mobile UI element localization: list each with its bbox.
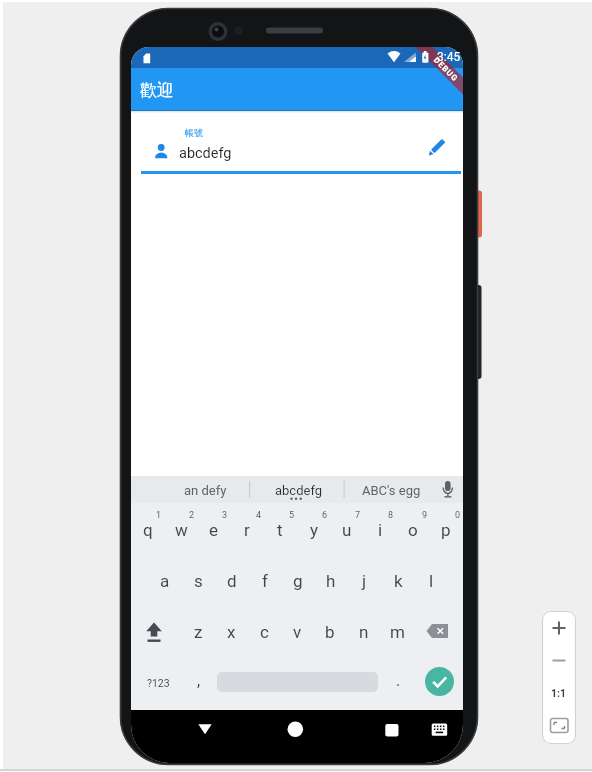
button[interactable]: i — [320, 510, 440, 550]
button[interactable]: s — [138, 561, 258, 601]
staticText: k — [394, 571, 403, 591]
staticText: 2 — [189, 510, 195, 521]
staticText: 帳號 — [185, 127, 203, 138]
staticText: 7 — [355, 510, 361, 521]
button[interactable]: t — [220, 510, 340, 550]
staticText: p — [441, 520, 451, 540]
button[interactable] — [422, 133, 452, 163]
staticText: a — [160, 571, 170, 591]
staticText: r — [244, 520, 250, 540]
button[interactable] — [425, 667, 454, 696]
button[interactable]: y — [254, 510, 374, 550]
button[interactable] — [185, 714, 225, 744]
button[interactable]: an defy — [145, 470, 265, 510]
button[interactable]: v — [237, 612, 357, 652]
button[interactable]: l — [371, 561, 463, 601]
staticText: 歡迎 — [140, 80, 174, 101]
button[interactable]: h — [271, 561, 391, 601]
staticText: 4 — [256, 510, 262, 521]
staticText: 8 — [388, 510, 394, 521]
staticText: d — [227, 571, 237, 591]
staticText: abcdefg — [179, 145, 232, 162]
button[interactable]: p — [386, 510, 463, 550]
staticText: v — [293, 622, 302, 642]
button[interactable]: u — [287, 510, 407, 550]
button[interactable]: j — [304, 561, 424, 601]
staticText: x — [227, 622, 236, 642]
button[interactable]: x — [171, 612, 291, 652]
button[interactable]: b — [270, 612, 390, 652]
staticText: t — [277, 520, 283, 540]
button[interactable] — [546, 713, 572, 739]
button[interactable] — [546, 648, 572, 674]
button[interactable] — [141, 117, 421, 172]
staticText: 6 — [322, 510, 328, 521]
staticText: 1 — [156, 510, 162, 521]
staticText: DEBUG — [432, 56, 460, 84]
staticText: ABC's egg — [362, 483, 421, 498]
button[interactable]: abcdefg — [239, 470, 359, 510]
button[interactable]: o — [353, 510, 463, 550]
button[interactable]: n — [304, 612, 424, 652]
button[interactable]: ABC's egg — [331, 470, 451, 510]
button[interactable]: q — [131, 510, 208, 550]
staticText: o — [408, 520, 418, 540]
staticText: 3 — [222, 510, 228, 521]
staticText: f — [262, 571, 268, 591]
staticText: i — [378, 520, 383, 540]
button[interactable]: k — [338, 561, 458, 601]
staticText: ?123 — [147, 677, 170, 689]
button[interactable]: w — [131, 510, 241, 550]
staticText: . — [396, 671, 401, 690]
staticText: q — [143, 520, 153, 540]
button[interactable] — [546, 615, 572, 641]
staticText: j — [362, 571, 367, 591]
staticText: abcdefg — [275, 483, 323, 498]
button[interactable]: f — [205, 561, 325, 601]
staticText: m — [390, 622, 405, 642]
button[interactable]: m — [337, 612, 457, 652]
staticText: b — [325, 622, 335, 642]
staticText: , — [197, 671, 201, 690]
button[interactable]: ?123 — [131, 663, 218, 703]
button[interactable] — [546, 680, 572, 706]
button[interactable]: g — [238, 561, 358, 601]
button[interactable]: r — [187, 510, 307, 550]
staticText: 5 — [289, 510, 295, 521]
button[interactable]: e — [154, 510, 274, 550]
button[interactable]: . — [338, 660, 458, 700]
staticText: n — [359, 622, 369, 642]
staticText: an defy — [184, 483, 227, 498]
button[interactable]: a — [131, 561, 225, 601]
staticText: c — [260, 622, 269, 642]
button[interactable]: , — [139, 660, 259, 700]
staticText: g — [293, 571, 303, 591]
button[interactable] — [275, 714, 315, 744]
staticText: 9 — [422, 510, 428, 521]
button[interactable]: c — [204, 612, 324, 652]
staticText: w — [175, 520, 188, 540]
button[interactable]: d — [172, 561, 292, 601]
staticText: s — [194, 571, 203, 591]
staticText: 3:45 — [437, 50, 461, 64]
button[interactable] — [425, 714, 449, 738]
button[interactable] — [367, 714, 407, 744]
staticText: y — [310, 520, 319, 540]
button[interactable]: z — [138, 612, 258, 652]
staticText: z — [194, 622, 203, 642]
staticText: l — [429, 571, 434, 591]
staticText: 0 — [455, 510, 461, 521]
staticText: u — [342, 520, 352, 540]
staticText: 1:1 — [551, 687, 567, 699]
staticText: h — [326, 571, 336, 591]
staticText: e — [209, 520, 219, 540]
